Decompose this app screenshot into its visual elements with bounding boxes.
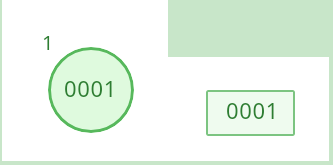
staticText: 0001 <box>226 95 280 125</box>
button[interactable] <box>206 90 295 136</box>
staticText: 1 <box>42 29 54 56</box>
button[interactable] <box>48 47 134 133</box>
staticText: 0001 <box>64 73 118 103</box>
